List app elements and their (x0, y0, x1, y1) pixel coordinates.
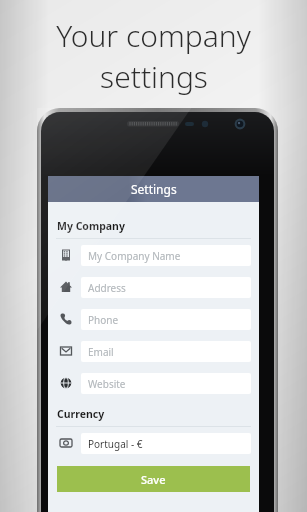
staticText: Save (141, 472, 166, 487)
button[interactable]: Website (56, 367, 251, 399)
staticText: Currency (57, 407, 105, 421)
staticText: My Company Name (88, 249, 181, 263)
button[interactable]: Email (56, 335, 251, 367)
button[interactable]: Address (56, 271, 251, 303)
other: Phone (56, 312, 76, 326)
other: Company name (56, 248, 76, 262)
staticText: Email (88, 345, 114, 359)
button[interactable]: Settings (48, 176, 259, 202)
other: Website (56, 376, 76, 390)
staticText: Website (88, 377, 126, 391)
staticText: Address (88, 281, 126, 295)
staticText: My Company (57, 219, 125, 233)
other: Address (56, 280, 76, 294)
other: Email (56, 344, 76, 358)
other: Currency (56, 436, 76, 450)
button[interactable]: Save (57, 466, 250, 492)
button[interactable]: Phone (56, 303, 251, 335)
staticText: settings (100, 56, 208, 97)
staticText: Your company (56, 15, 251, 56)
staticText: Phone (88, 313, 119, 327)
button[interactable]: Company name (56, 239, 251, 271)
staticText: Portugal - € (88, 437, 143, 451)
button[interactable]: Currency (56, 427, 251, 459)
staticText: Settings (131, 181, 177, 197)
